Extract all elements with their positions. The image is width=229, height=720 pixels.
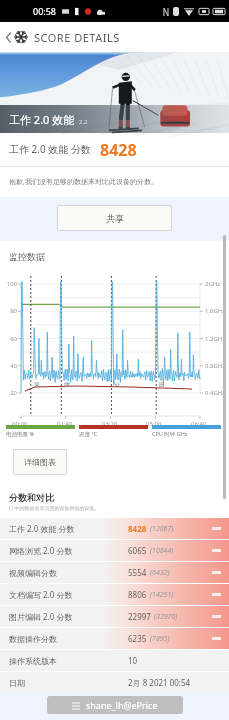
staticText: (6432)	[150, 568, 170, 578]
button[interactable]: 网络浏览 2.0 分数	[0, 540, 229, 561]
staticText: 01:40	[57, 420, 73, 428]
staticText: 00:58	[33, 5, 57, 17]
staticText: 网络浏览 2.0 分数	[9, 545, 73, 556]
staticText: 操作系统版本	[9, 656, 57, 666]
staticText: 文档编写 2.0 分数	[9, 589, 73, 600]
button[interactable]: 操作系统版本	[0, 650, 229, 671]
staticText: 10	[128, 655, 138, 666]
staticText: 详细图表	[24, 457, 56, 467]
staticText: 工作 2.0 效能 分数	[9, 523, 75, 534]
button[interactable]: 数据操作分数	[0, 628, 229, 649]
staticText: (12067)	[150, 524, 174, 534]
staticText: 8428	[100, 139, 137, 161]
staticText: 00:00	[12, 420, 28, 428]
staticText: (32970)	[154, 612, 178, 622]
staticText: ( ) 中的数值表示与您的设备类似的设备。	[9, 505, 100, 512]
staticText: 日期	[9, 678, 25, 688]
button[interactable]: 文档编写 2.0 分数	[0, 584, 229, 605]
button[interactable]: 共享	[57, 205, 172, 231]
staticText: 2.2	[79, 118, 88, 126]
staticText: 网页浏览	[33, 382, 40, 391]
button[interactable]: 日期	[0, 672, 229, 693]
staticText: 数据操作	[63, 382, 70, 391]
staticText: 视频编辑分数	[9, 568, 57, 578]
staticText: 1.2GHz	[205, 335, 226, 343]
staticText: 20	[0, 389, 17, 397]
staticText: 100	[0, 280, 17, 288]
staticText: 共享	[106, 213, 124, 224]
staticText: 1.6GHz	[205, 307, 226, 315]
staticText: 工作 2.0 效能	[9, 112, 75, 127]
staticText: 2月 8 2021 00:54	[128, 677, 191, 688]
staticText: SCORE DETAILS	[34, 30, 120, 45]
staticText: 8806	[128, 589, 147, 600]
staticText: 监控数据	[9, 251, 45, 262]
staticText: 文档编写	[113, 382, 120, 391]
staticText: (14251)	[150, 590, 174, 600]
staticText: 05:00	[146, 420, 162, 428]
staticText: 6065	[128, 545, 147, 556]
staticText: 温度 °C	[79, 430, 98, 438]
staticText: 0.8GHz	[205, 362, 226, 370]
staticText: 工作 2.0 效能 分数	[9, 142, 91, 156]
staticText: 数据操作分数	[9, 634, 57, 644]
staticText: (7895)	[150, 634, 170, 644]
staticText: 8428	[128, 523, 147, 534]
button[interactable]: Back	[2, 26, 14, 48]
staticText: 5554	[128, 567, 147, 578]
staticText: 06:40	[191, 420, 207, 428]
button[interactable]: 详细图表	[13, 449, 67, 475]
staticText: 03:20	[102, 420, 118, 428]
staticText: CPU 时钟 GHz	[152, 430, 188, 438]
staticText: 40	[0, 362, 17, 370]
staticText: 80	[0, 307, 17, 315]
button[interactable]: 工作 2.0 效能 分数	[0, 518, 229, 539]
staticText: shane_lh@ePrice	[86, 699, 158, 711]
staticText: 图片编辑	[158, 382, 165, 391]
staticText: (10844)	[150, 546, 174, 556]
staticText: 6235	[128, 633, 147, 644]
button[interactable]: 视频编辑分数	[0, 562, 229, 583]
button[interactable]: 图片编辑 2.0 分数	[0, 606, 229, 627]
staticText: 60	[0, 335, 17, 343]
staticText: 分数和对比	[9, 492, 54, 503]
staticText: 电池电量 %	[6, 430, 35, 438]
staticText: 2GHz	[205, 280, 221, 288]
staticText: 抱歉,我们没有足够的数据来对比此设备的分数。	[9, 177, 158, 187]
staticText: 22997	[128, 611, 151, 622]
staticText: 0.4GHz	[205, 389, 226, 397]
staticText: 图片编辑 2.0 分数	[9, 611, 73, 622]
